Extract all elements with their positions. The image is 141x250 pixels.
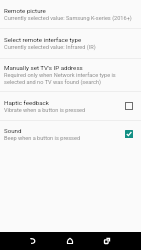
button[interactable]: Manually set TV's IP address [0, 59, 141, 91]
button[interactable]: Remote picture [0, 0, 141, 28]
button[interactable]: Recent apps [88, 232, 125, 250]
staticText: Sound [4, 127, 22, 135]
button[interactable]: Disable [122, 127, 136, 141]
staticText: Beep when a button is pressed [4, 135, 81, 142]
staticText: Select remote interface type [4, 36, 82, 44]
staticText: Currently selected value: Samsung K-seri… [4, 15, 132, 22]
button[interactable]: Haptic feedback [0, 92, 141, 120]
button[interactable]: Back [14, 232, 51, 250]
staticText: Required only when Network interface typ… [4, 72, 136, 86]
staticText: Haptic feedback [4, 99, 49, 107]
button[interactable]: Select remote interface type [0, 29, 141, 58]
button[interactable]: Sound [0, 121, 141, 149]
staticText: Vibrate when a button is pressed [4, 107, 86, 114]
button[interactable]: Home [51, 232, 88, 250]
staticText: Currently selected value: Infrared (IR) [4, 44, 96, 51]
staticText: Manually set TV's IP address [4, 64, 83, 72]
staticText: Remote picture [4, 7, 46, 15]
button[interactable]: Enable [122, 99, 136, 113]
